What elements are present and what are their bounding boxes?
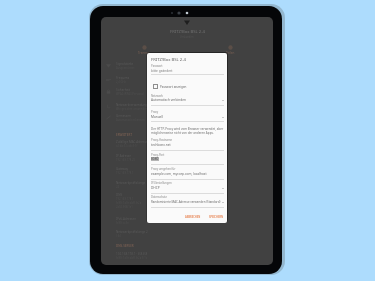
button[interactable]: Gateway	[116, 167, 216, 175]
staticText: Proxy-Port	[151, 153, 165, 157]
button[interactable]: Teilen	[187, 45, 273, 55]
staticText: Der HTTP-Proxy wird vom Browser verwende…	[151, 127, 224, 135]
staticText: DHCP	[151, 186, 160, 190]
button[interactable]: ABBRECHEN	[181, 213, 205, 221]
staticText: FRITZ!Box BSL 2-4	[170, 29, 205, 35]
button[interactable]: Passwort anzeigen	[153, 84, 187, 89]
staticText: Gateway	[116, 167, 129, 171]
staticText: DNS-SERVER	[116, 244, 134, 248]
staticText: Proxy	[151, 110, 159, 114]
button[interactable]: Sicherheit	[101, 85, 273, 98]
staticText: Randomisierte MAC-Adresse verwenden (Sta…	[151, 200, 221, 204]
staticText: bitte geändert	[151, 69, 173, 73]
staticText: FRITZ!Box BSL 2-4	[151, 57, 186, 63]
staticText: Netzwerkpräfixlänge 2	[116, 230, 148, 234]
button[interactable]: Trennen	[101, 45, 187, 55]
staticText: Netzwerkverwendung	[116, 103, 148, 107]
staticText: ERWEITERT	[116, 133, 133, 137]
staticText: Sicherheit	[116, 88, 131, 92]
staticText: IP-Einstellungen	[151, 181, 172, 185]
staticText: 192.168.178.1 · 8.8.8.8	[116, 252, 148, 256]
staticText: Datenschutz	[151, 195, 167, 199]
staticText: example.com, mycorp.com, localhost	[151, 172, 207, 176]
staticText: Automatisch verbinden	[151, 98, 186, 102]
staticText: Teilen	[226, 51, 235, 55]
staticText: Netzwerkpräfixlänge	[116, 181, 146, 185]
button[interactable]: Netzwerkverwendung	[101, 100, 273, 113]
button[interactable]: Netzwerkpräfixlänge	[116, 181, 216, 189]
button[interactable]: IPv6-Adressen	[116, 217, 216, 225]
staticText: Proxy umgehen für	[151, 167, 176, 171]
staticText: Zufällige MAC-Adresse	[116, 140, 148, 144]
staticText: Passwort	[151, 64, 163, 68]
staticText: DNS	[116, 193, 123, 197]
staticText: IP-Adresse	[116, 154, 131, 158]
button[interactable]: Frequenz	[101, 73, 273, 86]
staticText: Wie gewohnt verwenden	[116, 107, 148, 111]
staticText: Signalstärke	[116, 62, 134, 66]
button[interactable]: Gemessen	[101, 111, 273, 124]
staticText: Proxy-Hostname	[151, 138, 172, 142]
staticText: Manuell	[151, 115, 164, 119]
button[interactable]: SPEICHERN	[205, 213, 227, 221]
staticText: Frequenz	[116, 76, 130, 80]
staticText: Netzwerk	[151, 94, 163, 98]
staticText: Gemessen	[116, 114, 131, 118]
button[interactable]: DNS	[116, 193, 216, 209]
button[interactable]: Zufällige MAC-Adresse	[116, 140, 216, 148]
button[interactable]: IP-Adresse	[116, 154, 216, 162]
staticText: 8080	[151, 157, 159, 161]
staticText: Trennen	[138, 51, 150, 55]
staticText: IPv6-Adressen	[116, 217, 137, 221]
staticText: Passwort anzeigen	[160, 85, 187, 89]
button[interactable]: Signalstärke	[101, 59, 273, 72]
staticText: techbonx.net	[151, 143, 171, 147]
